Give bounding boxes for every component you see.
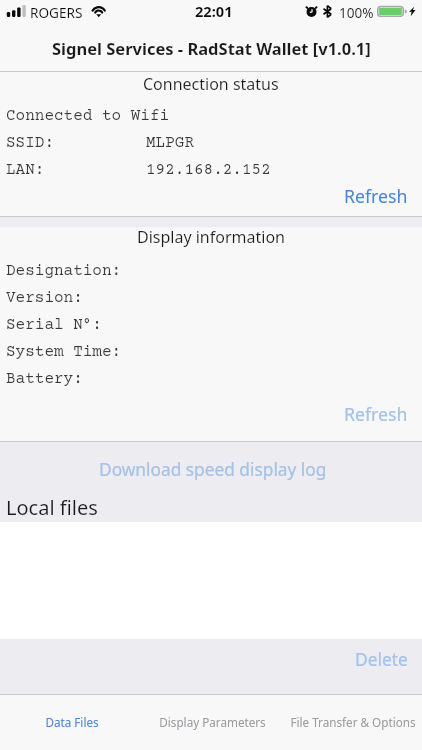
- staticText: MLPGR: [146, 134, 194, 152]
- button[interactable]: Display Parameters: [140, 695, 281, 750]
- button[interactable]: Delete: [341, 641, 422, 677]
- staticText: Data Files: [45, 714, 99, 730]
- staticText: Designation:: [6, 262, 122, 280]
- staticText: Refresh: [344, 402, 408, 426]
- staticText: Connection status: [143, 73, 279, 95]
- staticText: ROGERS: [30, 3, 83, 22]
- other: Cellular signal: [6, 5, 26, 17]
- other: Battery 100 percent: [377, 5, 407, 18]
- staticText: File Transfer & Options: [290, 714, 416, 730]
- staticText: Local files: [6, 494, 98, 521]
- staticText: Connected to Wifi: [6, 107, 170, 125]
- staticText: Display Parameters: [159, 714, 266, 730]
- button[interactable]: Download speed display log: [0, 454, 422, 486]
- staticText: System Time:: [6, 343, 122, 361]
- staticText: SSID:: [6, 134, 54, 152]
- staticText: Signel Services - RadStat Wallet [v1.0.1…: [52, 37, 371, 59]
- staticText: 22:01: [195, 1, 233, 21]
- staticText: Download speed display log: [99, 458, 327, 482]
- staticText: Battery:: [6, 370, 83, 388]
- staticText: Delete: [355, 647, 408, 671]
- button[interactable]: Refresh: [330, 179, 422, 213]
- other: Bluetooth: [323, 5, 333, 18]
- staticText: LAN:: [6, 161, 45, 179]
- staticText: Serial N°:: [6, 316, 102, 334]
- button[interactable]: Data Files: [0, 695, 140, 750]
- button[interactable]: Refresh: [330, 397, 422, 431]
- staticText: Display information: [137, 226, 285, 248]
- other: Wi-Fi: [90, 5, 107, 17]
- staticText: Refresh: [344, 184, 408, 208]
- button[interactable]: File Transfer & Options: [281, 695, 422, 750]
- other: Alarm set: [305, 5, 318, 18]
- staticText: 192.168.2.152: [146, 161, 271, 179]
- staticText: 100%: [339, 3, 374, 22]
- staticText: Version:: [6, 289, 83, 307]
- other: Charging: [409, 6, 417, 17]
